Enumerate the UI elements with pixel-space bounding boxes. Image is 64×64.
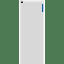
- button[interactable]: List item 8: [19, 37, 45, 42]
- button[interactable]: List item 7: [19, 32, 45, 37]
- button[interactable]: List item 4: [19, 17, 45, 22]
- button[interactable]: Open navigation menu: [21, 1, 23, 3]
- button[interactable]: List item 2: [19, 7, 45, 12]
- button[interactable]: List item 5: [19, 22, 45, 27]
- button[interactable]: List item 3: [19, 12, 45, 17]
- button[interactable]: List item 6: [19, 27, 45, 32]
- button[interactable]: List item 1: [19, 2, 45, 7]
